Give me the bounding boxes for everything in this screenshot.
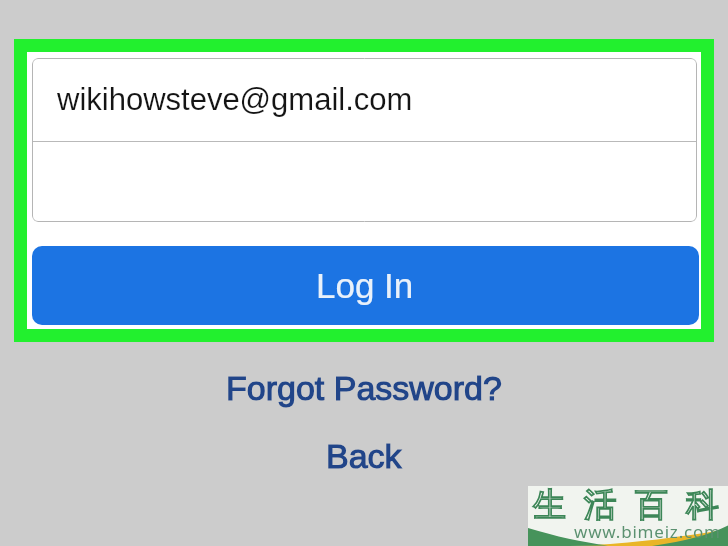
- staticText: wikihowsteve@gmail.com: [57, 82, 413, 117]
- button[interactable]: Password: [32, 142, 697, 222]
- button[interactable]: Log In: [32, 246, 699, 325]
- staticText: Back: [326, 437, 402, 475]
- button[interactable]: Forgot Password?: [0, 363, 728, 413]
- staticText: Forgot Password?: [226, 369, 502, 407]
- staticText: Log In: [316, 266, 414, 305]
- button[interactable]: Back: [0, 434, 728, 478]
- staticText: www.bimeiz.com: [574, 520, 721, 543]
- staticText: 生活百科: [524, 484, 724, 526]
- button[interactable]: wikihowsteve@gmail.com: [32, 58, 697, 141]
